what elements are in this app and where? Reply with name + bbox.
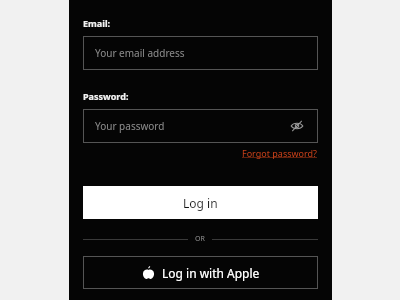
staticText: Your password: [95, 119, 165, 133]
staticText: Log in: [183, 195, 218, 211]
button[interactable]: Show password: [288, 117, 306, 135]
button[interactable]: Log in with Apple: [83, 256, 318, 289]
button[interactable]: Your email address: [83, 36, 318, 70]
button[interactable]: Your password: [83, 109, 318, 143]
staticText: Log in with Apple: [162, 265, 260, 281]
button[interactable]: Forgot password?: [242, 147, 318, 159]
button[interactable]: Log in: [83, 186, 318, 219]
staticText: OR: [195, 234, 205, 244]
staticText: Password:: [83, 90, 129, 102]
staticText: Email:: [83, 17, 111, 29]
staticText: Your email address: [95, 46, 185, 60]
staticText: Forgot password?: [242, 147, 318, 159]
